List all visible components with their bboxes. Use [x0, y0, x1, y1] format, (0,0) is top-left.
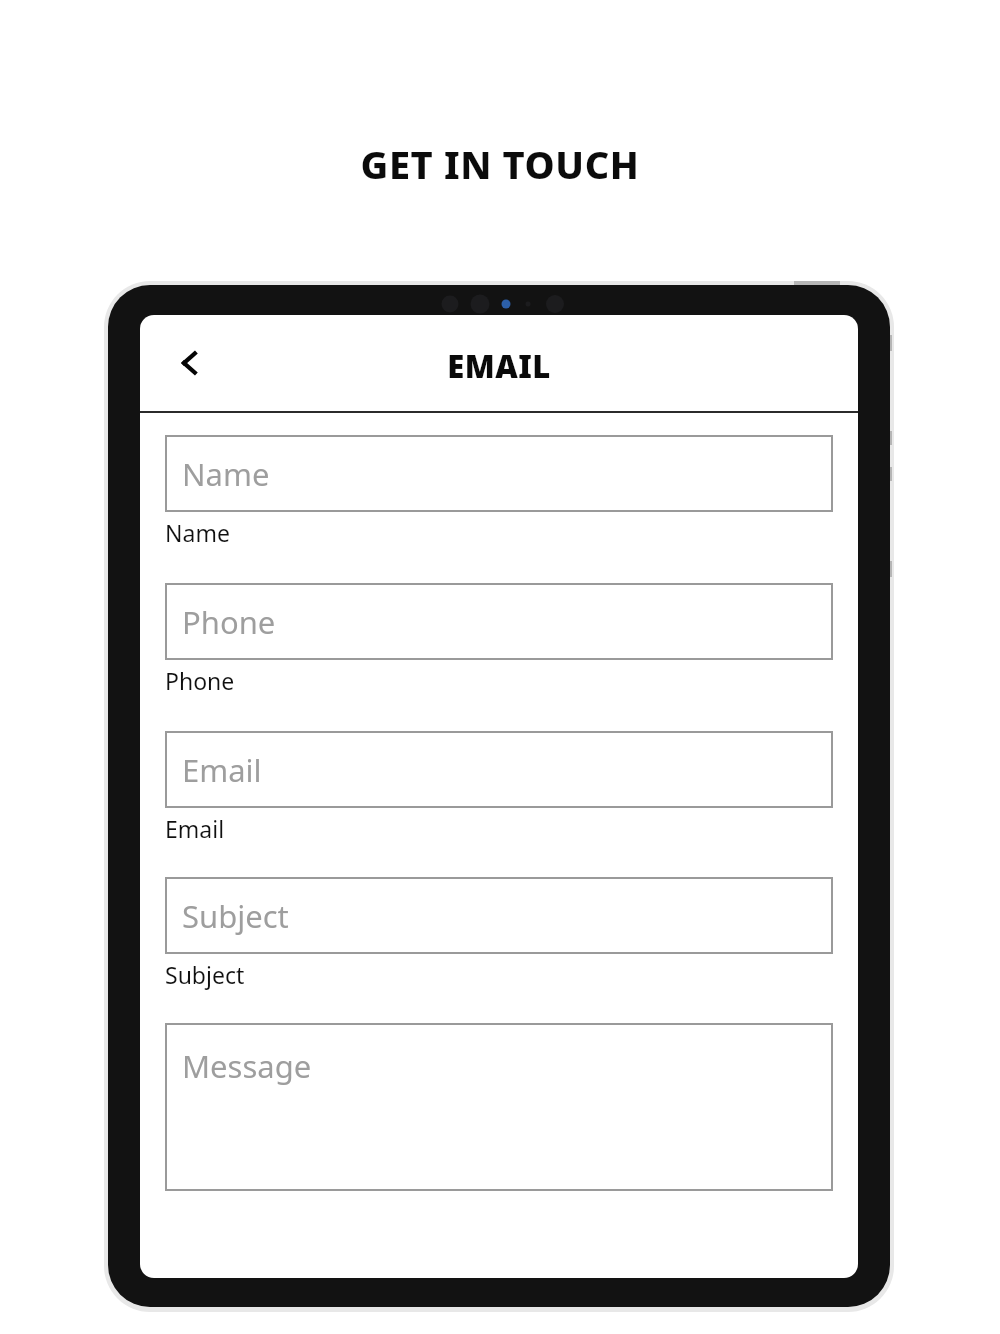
staticText: Subject	[182, 895, 289, 937]
staticText: EMAIL	[140, 345, 858, 387]
button[interactable]: Phone	[165, 583, 833, 660]
button[interactable]: Back	[160, 333, 220, 393]
staticText: Phone	[182, 601, 276, 643]
button[interactable]: Name	[165, 435, 833, 512]
button[interactable]: Email	[165, 731, 833, 808]
staticText: Email	[165, 813, 225, 844]
button[interactable]: Subject	[165, 877, 833, 954]
staticText: Message	[182, 1045, 312, 1087]
staticText: Phone	[165, 665, 235, 696]
staticText: GET IN TOUCH	[0, 138, 1000, 190]
staticText: Name	[182, 453, 270, 495]
button[interactable]: Message	[165, 1023, 833, 1191]
staticText: Subject	[165, 959, 245, 990]
staticText: Name	[165, 517, 230, 548]
staticText: Email	[182, 749, 262, 791]
